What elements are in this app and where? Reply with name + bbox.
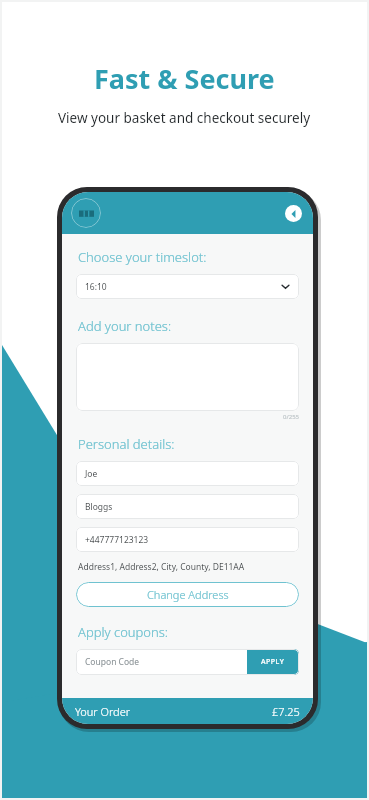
button[interactable]: Home logo	[71, 198, 101, 228]
button[interactable]: Your Order	[62, 698, 313, 724]
button[interactable]: Joe	[76, 461, 299, 486]
staticText: Personal details:	[78, 435, 175, 453]
staticText: Add your notes:	[78, 317, 172, 335]
button[interactable]: Coupon Code	[76, 649, 247, 675]
button[interactable]: Change Address	[76, 582, 299, 607]
staticText: 0/255	[76, 413, 299, 421]
button[interactable]: Bloggs	[76, 494, 299, 519]
button[interactable]: 16:10	[76, 274, 299, 299]
staticText: Change Address	[147, 587, 229, 602]
button[interactable]: +447777123123	[76, 527, 299, 552]
staticText: Bloggs	[85, 501, 113, 513]
staticText: Apply coupons:	[78, 623, 169, 641]
button[interactable]	[76, 343, 299, 411]
staticText: Choose your timeslot:	[78, 248, 207, 266]
staticText: Joe	[85, 468, 98, 480]
staticText: £7.25	[272, 704, 300, 719]
staticText: 16:10	[85, 281, 281, 293]
button[interactable]: Back	[285, 205, 302, 222]
staticText: Fast & Secure	[94, 60, 275, 97]
staticText: Address1, Address2, City, County, DE11AA	[78, 561, 245, 573]
staticText: View your basket and checkout securely	[58, 109, 311, 127]
staticText: APPLY	[261, 657, 285, 667]
button[interactable]: APPLY	[247, 649, 299, 675]
staticText: Your Order	[75, 704, 272, 719]
staticText: +447777123123	[85, 534, 149, 546]
staticText: Coupon Code	[85, 656, 140, 668]
